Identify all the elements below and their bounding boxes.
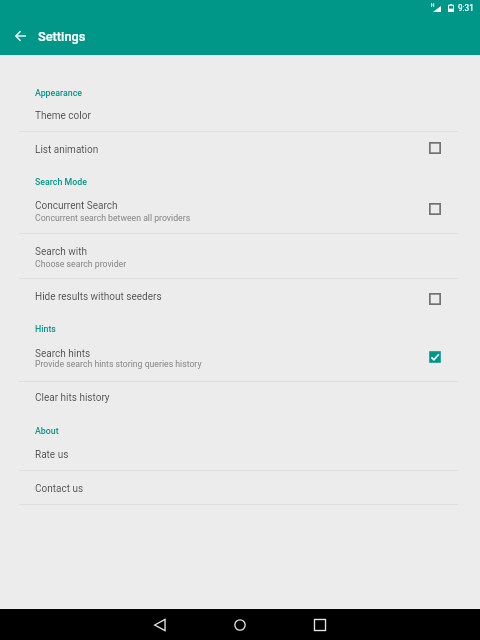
button[interactable] — [0, 334, 480, 381]
button[interactable]: Unchecked — [419, 132, 451, 164]
staticText: Choose search provider — [35, 259, 127, 269]
staticText: Concurrent search between all providers — [35, 213, 191, 223]
staticText: Search with — [35, 246, 87, 258]
button[interactable] — [0, 233, 480, 278]
staticText: Search hints — [35, 348, 91, 360]
staticText: About — [35, 426, 59, 436]
staticText: Contact us — [35, 483, 84, 495]
button[interactable]: Navigate up — [9, 24, 32, 47]
button[interactable] — [0, 381, 480, 415]
staticText: Rate us — [35, 449, 69, 461]
staticText: Search Mode — [35, 177, 87, 187]
button[interactable] — [0, 97, 480, 131]
button[interactable] — [0, 436, 480, 470]
staticText: List animation — [35, 144, 99, 156]
staticText: 9:31 — [458, 3, 474, 13]
button[interactable] — [0, 470, 480, 504]
button[interactable]: Recent apps — [300, 609, 340, 640]
button[interactable] — [0, 131, 480, 165]
button[interactable]: Unchecked — [419, 193, 451, 225]
staticText: Concurrent Search — [35, 200, 118, 212]
button[interactable]: Checked — [419, 341, 451, 373]
staticText: Hide results without seeders — [35, 291, 162, 303]
button[interactable] — [0, 278, 480, 312]
staticText: Theme color — [35, 110, 91, 122]
staticText: Appearance — [35, 88, 82, 98]
staticText: Settings — [38, 29, 86, 44]
button[interactable]: Back — [140, 609, 180, 640]
staticText: Hints — [35, 324, 56, 334]
staticText: Clear hits history — [35, 392, 110, 404]
button[interactable]: Unchecked — [419, 283, 451, 315]
button[interactable]: Home — [220, 609, 260, 640]
button[interactable] — [0, 187, 480, 233]
staticText: Provide search hints storing queries his… — [35, 359, 202, 369]
